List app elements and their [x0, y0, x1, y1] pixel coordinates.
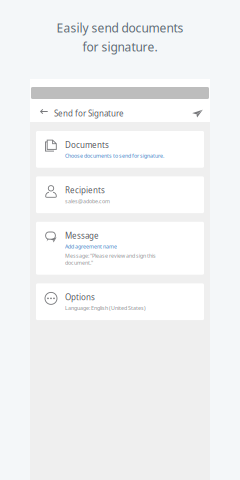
staticText: Language: English (United States) [65, 304, 146, 312]
staticText: for signature. [82, 39, 157, 55]
button[interactable]: Send [186, 104, 210, 122]
button[interactable]: Recipients [30, 176, 204, 213]
staticText: Message: "Please review and sign this do… [65, 252, 156, 266]
button[interactable]: Message [30, 222, 204, 275]
button[interactable]: Documents [30, 131, 204, 168]
staticText: Add agreement name [65, 243, 117, 250]
staticText: Documents [65, 139, 109, 150]
staticText: Send for Signature [54, 108, 124, 119]
staticText: Recipients [65, 185, 105, 195]
staticText: sales@adobe.com [65, 197, 110, 205]
button[interactable]: Back [30, 103, 54, 124]
staticText: Message [65, 230, 99, 241]
staticText: Choose documents to send for signature. [65, 152, 164, 159]
button[interactable]: Options [30, 283, 204, 320]
staticText: Easily send documents [56, 20, 183, 36]
staticText: Options [65, 292, 95, 302]
